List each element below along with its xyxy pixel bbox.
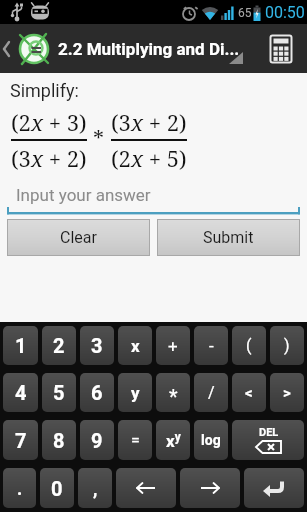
staticText: (2x + 5) xyxy=(111,143,187,173)
staticText: 7 xyxy=(15,429,27,452)
button[interactable]: > xyxy=(270,373,304,412)
staticText: = xyxy=(131,431,140,450)
staticText: 00:50 xyxy=(265,3,305,22)
button[interactable] xyxy=(180,468,240,508)
staticText: 1 xyxy=(15,334,27,357)
button[interactable]: Input your answer xyxy=(0,185,307,215)
staticText: DEL xyxy=(259,426,279,439)
button[interactable]: . xyxy=(3,468,36,508)
button[interactable]: y xyxy=(118,373,152,412)
staticText: ) xyxy=(284,336,290,355)
staticText: (2x + 3) xyxy=(11,107,87,137)
staticText: y xyxy=(131,383,140,403)
staticText: 65 xyxy=(238,6,252,20)
button[interactable]: 9 xyxy=(80,420,114,460)
button[interactable]: Clear xyxy=(8,220,149,255)
staticText: Simplify: xyxy=(10,80,79,101)
button[interactable]: 5 xyxy=(42,373,76,412)
staticText: 4 xyxy=(15,381,27,404)
button[interactable]: x xyxy=(118,326,152,365)
staticText: 6 xyxy=(91,381,103,404)
staticText: 9 xyxy=(91,429,103,452)
staticText: 5 xyxy=(53,381,65,404)
staticText: xy xyxy=(166,430,181,451)
staticText: < xyxy=(245,384,253,402)
button[interactable]: 4 xyxy=(3,373,38,412)
staticText: + xyxy=(168,336,178,356)
button[interactable]: 1 xyxy=(3,326,38,365)
button[interactable]: ) xyxy=(270,326,304,365)
staticText: 8 xyxy=(53,429,65,452)
button[interactable]: * xyxy=(156,373,190,412)
button[interactable]: 2 xyxy=(42,326,76,365)
staticText: ( xyxy=(246,336,252,355)
staticText: - xyxy=(209,336,214,356)
staticText: * xyxy=(93,123,105,153)
button[interactable]: ( xyxy=(232,326,266,365)
button[interactable]: 2.2 Multiplying and Di... xyxy=(0,24,307,73)
button[interactable]: log xyxy=(194,420,228,460)
staticText: / xyxy=(208,383,215,402)
staticText: x xyxy=(131,336,140,356)
button[interactable]: 6 xyxy=(80,373,114,412)
staticText: Clear xyxy=(60,228,97,247)
staticText: > xyxy=(283,384,291,402)
button[interactable]: + xyxy=(156,326,190,365)
button[interactable]: 3 xyxy=(80,326,114,365)
staticText: (3x + 2) xyxy=(111,107,187,137)
staticText: 0 xyxy=(51,477,63,500)
button[interactable]: < xyxy=(232,373,266,412)
button[interactable]: , xyxy=(78,468,112,508)
button[interactable]: 8 xyxy=(42,420,76,460)
button[interactable]: 0 xyxy=(40,468,74,508)
staticText: 2 xyxy=(53,334,65,357)
button[interactable]: / xyxy=(194,373,228,412)
staticText: . xyxy=(17,478,23,499)
button[interactable]: = xyxy=(118,420,152,460)
button[interactable]: Submit xyxy=(158,220,299,255)
staticText: , xyxy=(93,478,98,499)
staticText: 2.2 Multiplying and Di... xyxy=(58,39,240,59)
staticText: (3x + 2) xyxy=(11,143,87,173)
button[interactable]: DEL xyxy=(232,420,304,460)
button[interactable] xyxy=(244,468,304,508)
staticText: 3 xyxy=(91,334,103,357)
button[interactable] xyxy=(263,31,299,67)
button[interactable]: - xyxy=(194,326,228,365)
button[interactable]: 7 xyxy=(3,420,38,460)
staticText: log xyxy=(201,432,221,448)
button[interactable]: xy xyxy=(156,420,190,460)
staticText: * xyxy=(169,385,178,408)
staticText: Submit xyxy=(203,228,254,247)
button[interactable] xyxy=(116,468,176,508)
staticText: Input your answer xyxy=(16,185,151,205)
